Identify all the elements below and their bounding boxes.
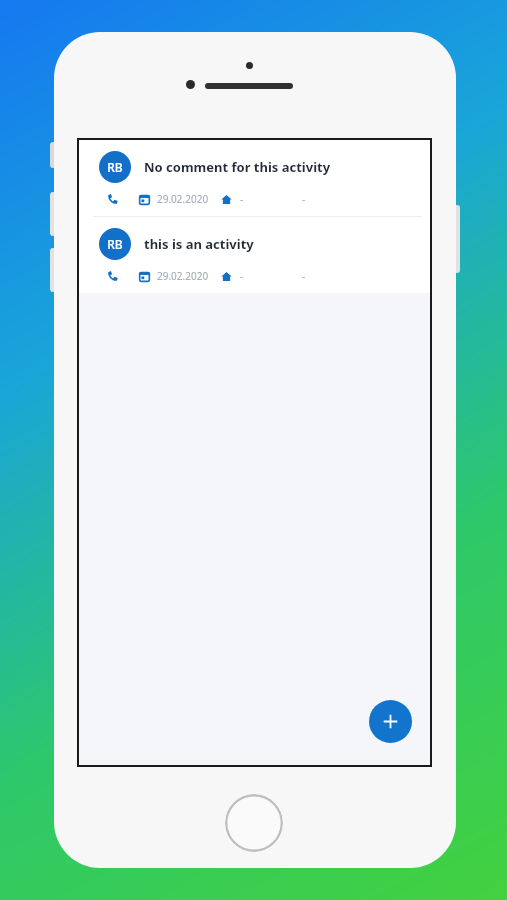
- button[interactable]: Add activity: [369, 700, 412, 743]
- staticText: -: [240, 269, 244, 283]
- staticText: -: [302, 192, 306, 206]
- button[interactable]: Home: [225, 794, 283, 852]
- staticText: 29.02.2020: [157, 192, 209, 206]
- staticText: 29.02.2020: [157, 269, 209, 283]
- staticText: -: [240, 192, 244, 206]
- button[interactable]: RB: [79, 217, 430, 293]
- staticText: -: [302, 269, 306, 283]
- staticText: this is an activity: [144, 235, 254, 253]
- staticText: RB: [107, 236, 123, 252]
- staticText: No comment for this activity: [144, 158, 331, 176]
- button[interactable]: RB: [79, 140, 430, 216]
- staticText: RB: [107, 159, 123, 175]
